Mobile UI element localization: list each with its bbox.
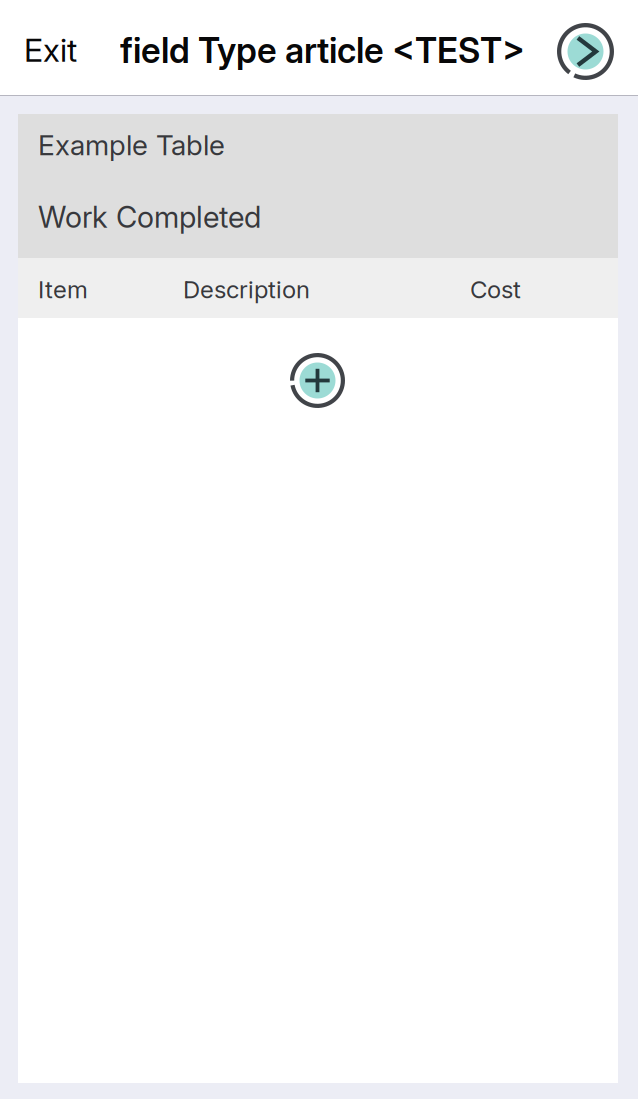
staticText: Exit bbox=[24, 31, 77, 69]
staticText: field Type article <TEST> bbox=[120, 29, 525, 71]
staticText: Description bbox=[183, 275, 310, 304]
staticText: Cost bbox=[470, 275, 521, 304]
staticText: Work Completed bbox=[38, 199, 261, 235]
button[interactable]: Continue bbox=[533, 0, 638, 95]
button[interactable]: Add row bbox=[290, 353, 345, 408]
staticText: Example Table bbox=[38, 128, 225, 162]
staticText: Item bbox=[38, 275, 88, 304]
button[interactable]: field Type article <TEST> bbox=[120, 0, 530, 95]
button[interactable]: Exit bbox=[0, 0, 120, 95]
